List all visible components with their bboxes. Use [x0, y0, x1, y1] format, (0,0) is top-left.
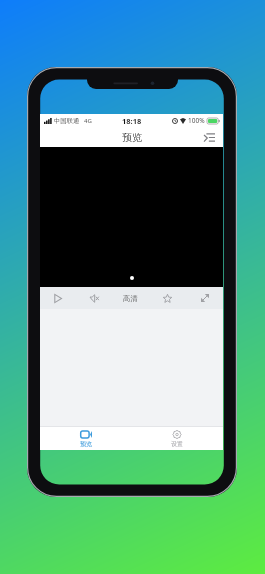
button[interactable]: 高清 [112, 287, 149, 309]
staticText: 设置 [171, 440, 183, 448]
button[interactable]: Fullscreen [186, 287, 223, 309]
button[interactable]: 设置 [131, 427, 223, 450]
button[interactable]: Favourite [149, 287, 186, 309]
staticText: 18:18 [122, 116, 142, 126]
button[interactable]: Mute [76, 287, 112, 309]
button[interactable]: 预览 [40, 427, 131, 450]
staticText: 预览 [122, 131, 142, 144]
staticText: 4G [84, 117, 92, 125]
staticText: 预览 [80, 440, 92, 448]
button[interactable]: Playlist [201, 129, 217, 145]
button[interactable]: Play [40, 287, 76, 309]
staticText: 中国联通 [54, 117, 80, 125]
staticText: 100% [188, 116, 205, 125]
staticText: 高清 [123, 294, 138, 303]
